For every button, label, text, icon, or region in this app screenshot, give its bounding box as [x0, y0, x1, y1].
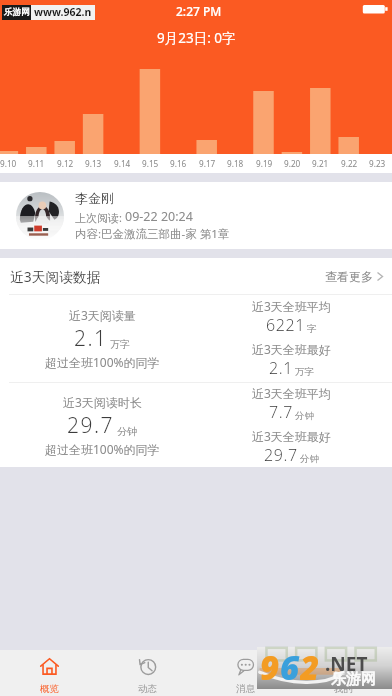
button[interactable]: 李金刚 — [0, 182, 392, 249]
staticText: 9 — [260, 645, 280, 687]
button[interactable]: Activity — [98, 650, 196, 696]
staticText: 近3天全班平均 — [252, 385, 331, 401]
button[interactable]: Overview — [0, 650, 98, 696]
button[interactable]: 查看更多 — [325, 265, 383, 288]
staticText: 9月23日: 0字 — [157, 29, 236, 47]
staticText: 分钟 — [295, 410, 314, 422]
staticText: 9.11 — [28, 158, 45, 169]
staticText: 9.23 — [369, 158, 386, 169]
staticText: 我的 — [334, 683, 353, 695]
staticText: 乐游网 — [4, 7, 30, 18]
staticText: 7.7 — [269, 401, 293, 423]
staticText: 近3天全班最好 — [252, 341, 331, 357]
staticText: 分钟 — [117, 425, 137, 438]
staticText: 概览 — [40, 683, 59, 695]
staticText: 9.19 — [256, 158, 273, 169]
staticText: 2 — [300, 645, 320, 687]
staticText: 2.1 — [74, 324, 108, 353]
staticText: 6 — [280, 645, 300, 687]
staticText: 9.12 — [57, 158, 74, 169]
button[interactable]: Messages — [196, 650, 294, 696]
staticText: 9.17 — [199, 158, 216, 169]
staticText: 9.20 — [284, 158, 301, 169]
staticText: .NET — [325, 651, 368, 677]
staticText: 万字 — [110, 338, 130, 351]
staticText: 上次阅读: — [75, 210, 125, 225]
staticText: 9.22 — [341, 158, 358, 169]
staticText: 动态 — [138, 683, 157, 695]
staticText: 近3天全班最好 — [252, 428, 331, 444]
staticText: 9.15 — [142, 158, 159, 169]
staticText: 9.10 — [0, 158, 17, 169]
staticText: 29.7 — [67, 411, 115, 440]
staticText: 超过全班100%的同学 — [45, 354, 160, 370]
staticText: 李金刚 — [75, 190, 114, 206]
staticText: 29.7 — [264, 444, 298, 466]
staticText: 9.13 — [85, 158, 102, 169]
staticText: 6221 — [266, 314, 305, 336]
staticText: 近3天全班平均 — [252, 298, 331, 314]
staticText: 乐游网 — [331, 670, 376, 689]
staticText: 9.16 — [170, 158, 187, 169]
staticText: 查看更多 — [325, 269, 373, 284]
staticText: 消息 — [236, 683, 255, 695]
staticText: 万字 — [295, 366, 314, 378]
staticText: 近3天阅读数据 — [10, 267, 101, 286]
staticText: 近3天阅读时长 — [63, 394, 142, 410]
staticText: 2:27 PM — [176, 3, 222, 19]
staticText: 分钟 — [300, 453, 319, 465]
staticText: 2.1 — [269, 357, 293, 379]
staticText: 超过全班100%的同学 — [45, 441, 160, 457]
staticText: 9.14 — [114, 158, 131, 169]
staticText: 09-22 20:24 — [125, 208, 193, 225]
button[interactable]: Profile — [294, 650, 392, 696]
staticText: 9.18 — [227, 158, 244, 169]
staticText: 内容:巴金激流三部曲-家 第1章 — [75, 226, 230, 242]
staticText: www.962.net — [34, 5, 95, 20]
staticText: 字 — [307, 323, 317, 335]
staticText: 9.21 — [312, 158, 329, 169]
staticText: 近3天阅读量 — [69, 307, 136, 323]
